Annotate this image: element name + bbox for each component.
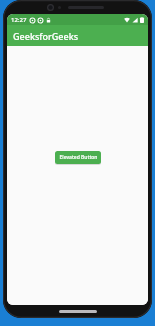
button[interactable]: Elevated Button [55,151,101,164]
staticText: Elevated Button [59,154,98,161]
staticText: 12:27 [11,16,27,24]
button[interactable]: GeeksforGeeks [7,25,148,46]
staticText: GeeksforGeeks [13,30,79,42]
